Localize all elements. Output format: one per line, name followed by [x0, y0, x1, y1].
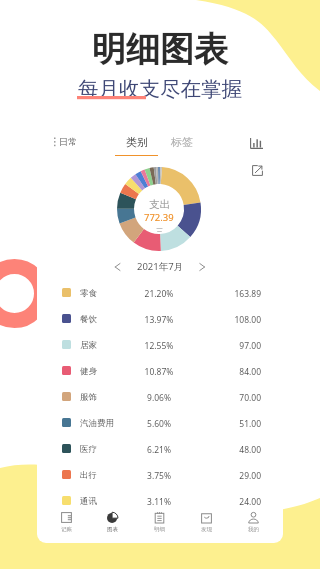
other: Next month: [198, 262, 206, 272]
staticText: 居家: [80, 340, 97, 351]
staticText: 9.06%: [133, 392, 185, 404]
staticText: 医疗: [80, 444, 97, 455]
staticText: 10.87%: [133, 366, 185, 378]
other: Previous month: [114, 262, 122, 272]
button[interactable]: Share: [252, 165, 263, 176]
button[interactable]: Statistics: [250, 138, 263, 149]
staticText: 772.39: [144, 211, 174, 224]
staticText: 29.00: [207, 470, 261, 482]
button[interactable]: 发现: [183, 508, 230, 533]
staticText: 163.89: [207, 288, 261, 300]
staticText: 每月收支尽在掌握: [78, 76, 242, 102]
staticText: 出行: [80, 470, 97, 481]
staticText: 108.00: [207, 314, 261, 326]
button[interactable]: 零食: [37, 279, 283, 305]
button[interactable]: 医疗: [37, 435, 283, 461]
button[interactable]: 汽油费用: [37, 409, 283, 435]
staticText: 3.75%: [133, 470, 185, 482]
button[interactable]: 明细: [136, 508, 183, 533]
staticText: 3.11%: [133, 496, 185, 508]
button[interactable]: 图表: [89, 508, 136, 533]
staticText: 2021年7月: [137, 260, 184, 273]
staticText: 12.55%: [133, 340, 185, 352]
button[interactable]: 我的: [230, 508, 277, 533]
staticText: 明细图表: [92, 28, 228, 71]
button[interactable]: 居家: [37, 331, 283, 357]
button[interactable]: 通讯: [37, 487, 283, 513]
staticText: 21.20%: [133, 288, 185, 300]
staticText: 发现: [201, 526, 212, 533]
staticText: 记账: [61, 526, 72, 533]
staticText: 餐饮: [80, 314, 97, 325]
staticText: 97.00: [207, 340, 261, 352]
staticText: 零食: [80, 288, 97, 299]
button[interactable]: 日常: [52, 134, 79, 149]
staticText: 51.00: [207, 418, 261, 430]
staticText: 我的: [248, 526, 259, 533]
staticText: 标签: [171, 135, 193, 149]
staticText: 类别: [126, 135, 148, 149]
staticText: 5.60%: [133, 418, 185, 430]
button[interactable]: 标签: [169, 135, 195, 149]
staticText: 13.97%: [133, 314, 185, 326]
staticText: 明细: [154, 526, 165, 533]
staticText: 健身: [80, 366, 97, 377]
staticText: 支出: [149, 198, 170, 211]
staticText: 6.21%: [133, 444, 185, 456]
button[interactable]: 健身: [37, 357, 283, 383]
staticText: 84.00: [207, 366, 261, 378]
button[interactable]: 记账: [43, 508, 89, 533]
button[interactable]: 类别: [110, 135, 163, 156]
staticText: 日常: [59, 136, 77, 147]
staticText: 汽油费用: [80, 418, 114, 429]
staticText: 48.00: [207, 444, 261, 456]
button[interactable]: 出行: [37, 461, 283, 487]
staticText: 24.00: [207, 496, 261, 508]
button[interactable]: 服饰: [37, 383, 283, 409]
button[interactable]: Previous month: [37, 260, 283, 273]
staticText: 70.00: [207, 392, 261, 404]
staticText: 服饰: [80, 392, 97, 403]
staticText: 图表: [107, 526, 118, 533]
button[interactable]: 餐饮: [37, 305, 283, 331]
staticText: 通讯: [80, 496, 97, 507]
